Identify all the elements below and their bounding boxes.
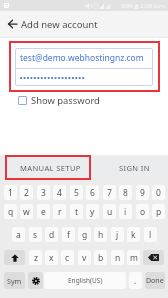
button[interactable]: r — [53, 204, 66, 219]
button[interactable]: u — [103, 204, 116, 219]
button[interactable] — [15, 69, 153, 86]
staticText: o — [140, 206, 146, 218]
button[interactable]: z — [29, 250, 42, 265]
staticText: q — [8, 206, 14, 218]
button[interactable]: c — [61, 250, 74, 265]
staticText: v — [82, 252, 87, 264]
button[interactable]: t — [70, 204, 83, 219]
button[interactable]: 2 — [20, 185, 33, 200]
staticText: MANUAL SETUP — [20, 163, 81, 173]
staticText: 2 — [24, 187, 29, 199]
staticText: r — [58, 206, 62, 218]
button[interactable]: Sym — [4, 272, 25, 289]
button[interactable]: test@demo.webhostingnz.com — [15, 48, 153, 68]
staticText: a — [16, 229, 21, 241]
button[interactable]: h — [94, 227, 107, 242]
button[interactable]: w — [20, 204, 33, 219]
staticText: z — [34, 252, 38, 264]
button[interactable]: i — [119, 204, 132, 219]
button[interactable]: k — [127, 227, 140, 242]
staticText: w — [23, 206, 30, 218]
staticText: s — [33, 229, 38, 241]
staticText: 0 — [156, 187, 161, 199]
button[interactable]: a — [12, 227, 25, 242]
button[interactable]: e — [37, 204, 50, 219]
button[interactable]: 1 — [4, 185, 17, 200]
button[interactable]: Backspace — [143, 250, 164, 265]
staticText: SIGN IN — [119, 163, 150, 173]
button[interactable]: o — [136, 204, 149, 219]
staticText: e — [41, 206, 46, 218]
staticText: j — [116, 229, 119, 241]
button[interactable]: n — [111, 250, 124, 265]
staticText: Add new account — [21, 18, 98, 31]
button[interactable]: v — [78, 250, 91, 265]
staticText: f — [67, 229, 70, 241]
staticText: 3 — [41, 187, 46, 199]
staticText: m — [130, 252, 138, 264]
button[interactable]: English(US) — [44, 272, 126, 289]
button[interactable]: Done — [145, 272, 165, 289]
button[interactable]: f — [62, 227, 75, 242]
staticText: h — [98, 229, 104, 241]
staticText: 5 — [74, 187, 79, 199]
staticText: Sym — [7, 276, 22, 286]
staticText: 4 — [57, 187, 62, 199]
button[interactable]: p — [152, 204, 165, 219]
staticText: 9 — [140, 187, 145, 199]
button[interactable]: j — [111, 227, 124, 242]
staticText: Show password — [31, 94, 100, 107]
staticText: 36% — [121, 2, 133, 10]
staticText: 2:38 p.m. — [140, 2, 166, 10]
staticText: c — [65, 252, 70, 264]
staticText: u — [107, 206, 113, 218]
staticText: i — [124, 206, 127, 218]
button[interactable]: Shift — [4, 250, 25, 265]
staticText: g — [82, 229, 88, 241]
button[interactable]: l — [144, 227, 157, 242]
button[interactable]: q — [4, 204, 17, 219]
staticText: d — [49, 229, 55, 241]
staticText: test@demo.webhostingnz.com — [20, 52, 144, 64]
staticText: p — [156, 206, 162, 218]
button[interactable]: 9 — [136, 185, 149, 200]
button[interactable]: MANUAL SETUP — [9, 155, 91, 181]
staticText: 8 — [123, 187, 128, 199]
button[interactable]: 7 — [103, 185, 116, 200]
staticText: l — [149, 229, 152, 241]
staticText: English(US) — [68, 276, 103, 285]
button[interactable]: s — [29, 227, 42, 242]
staticText: 7 — [107, 187, 112, 199]
button[interactable]: y — [86, 204, 99, 219]
staticText: Done — [146, 276, 164, 286]
button[interactable]: g — [78, 227, 91, 242]
button[interactable]: 4 — [53, 185, 66, 200]
button[interactable]: 0 — [152, 185, 165, 200]
staticText: 6 — [90, 187, 95, 199]
staticText: x — [49, 252, 54, 264]
button[interactable]: 8 — [119, 185, 132, 200]
button[interactable]: m — [127, 250, 140, 265]
button[interactable]: . — [129, 272, 142, 289]
button[interactable]: x — [45, 250, 58, 265]
button[interactable]: b — [94, 250, 107, 265]
staticText: 1 — [8, 187, 13, 199]
button[interactable]: Keyboard settings — [28, 272, 43, 289]
staticText: b — [98, 252, 104, 264]
button[interactable]: Show password — [18, 94, 100, 107]
button[interactable]: d — [45, 227, 58, 242]
button[interactable]: 6 — [86, 185, 99, 200]
staticText: t — [75, 206, 79, 218]
staticText: y — [90, 206, 95, 218]
button[interactable]: 5 — [70, 185, 83, 200]
button[interactable]: Back — [2, 12, 22, 36]
staticText: . — [134, 275, 137, 287]
staticText: k — [131, 229, 136, 241]
staticText: n — [115, 252, 121, 264]
button[interactable]: 3 — [37, 185, 50, 200]
button[interactable]: SIGN IN — [100, 155, 168, 181]
